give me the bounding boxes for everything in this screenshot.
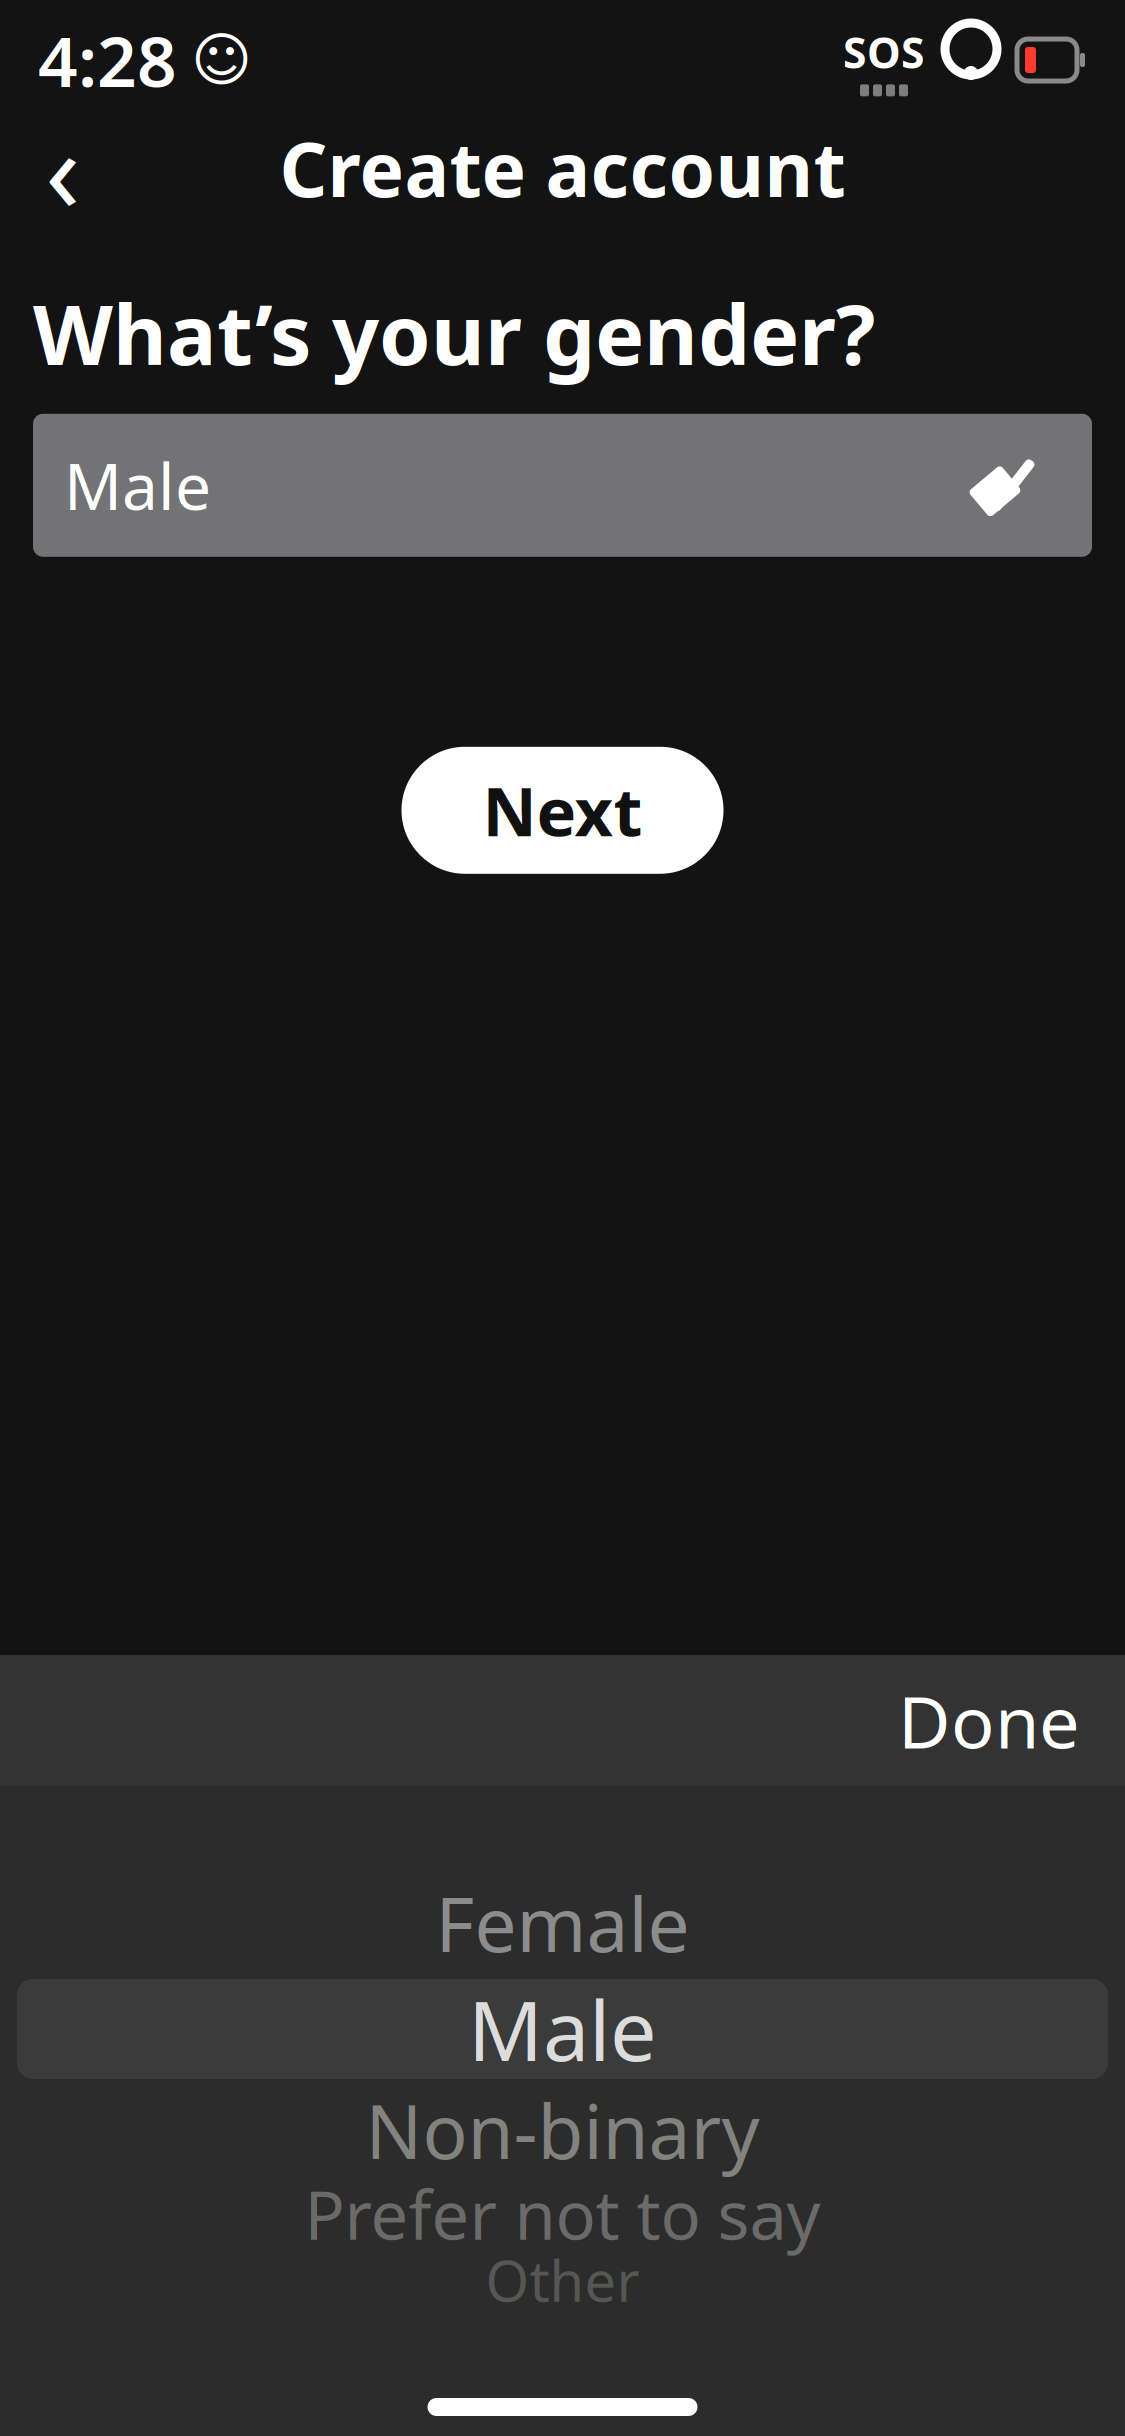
staticText: Male — [468, 1974, 657, 2084]
button[interactable]: Male — [33, 414, 1092, 557]
staticText: ‹ — [45, 92, 81, 244]
staticText: Create account — [279, 118, 845, 218]
staticText: Female — [435, 1873, 689, 1973]
button[interactable]: Done — [886, 1659, 1092, 1782]
staticText: SOS — [843, 24, 925, 80]
staticText: Next — [482, 766, 642, 854]
staticText: Done — [898, 1673, 1080, 1768]
button[interactable]: Next — [401, 747, 723, 874]
staticText: Non-binary — [365, 2080, 759, 2180]
staticText: 4:28 — [38, 14, 177, 106]
staticText: Other — [485, 2243, 639, 2317]
staticText: Male — [64, 443, 211, 528]
staticText: ☺ — [191, 27, 252, 93]
button[interactable]: Back — [18, 123, 108, 213]
staticText: Prefer not to say — [304, 2170, 820, 2258]
staticText: What’s your gender? — [33, 278, 875, 388]
